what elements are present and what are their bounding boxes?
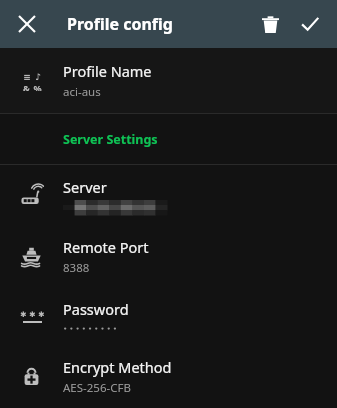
staticText: Server: [63, 177, 107, 197]
staticText: Password: [63, 299, 129, 319]
staticText: 8388: [63, 260, 90, 276]
staticText: %: [33, 82, 42, 91]
staticText: Server Settings: [63, 131, 158, 148]
staticText: ✱: [20, 310, 27, 319]
staticText: aci-aus: [63, 84, 101, 100]
staticText: Profile config: [67, 13, 173, 35]
staticText: Remote Port: [63, 237, 149, 257]
staticText: ✱: [38, 310, 44, 319]
button[interactable]: Encrypt Method: [0, 346, 337, 406]
staticText: &: [23, 82, 30, 91]
button[interactable]: Save: [292, 6, 328, 42]
button[interactable]: Delete: [252, 6, 288, 42]
staticText: AES-256-CFB: [63, 380, 131, 396]
staticText: ✱: [29, 310, 36, 319]
staticText: Encrypt Method: [63, 357, 172, 377]
button[interactable]: ✱: [0, 286, 337, 346]
button[interactable]: Close: [9, 6, 45, 42]
button[interactable]: Remote Port: [0, 226, 337, 286]
button[interactable]: ≡: [0, 48, 337, 113]
button[interactable]: Server: [0, 165, 337, 226]
staticText: ≡: [23, 72, 31, 81]
staticText: Profile Name: [63, 61, 152, 81]
staticText: ♪: [35, 72, 41, 81]
